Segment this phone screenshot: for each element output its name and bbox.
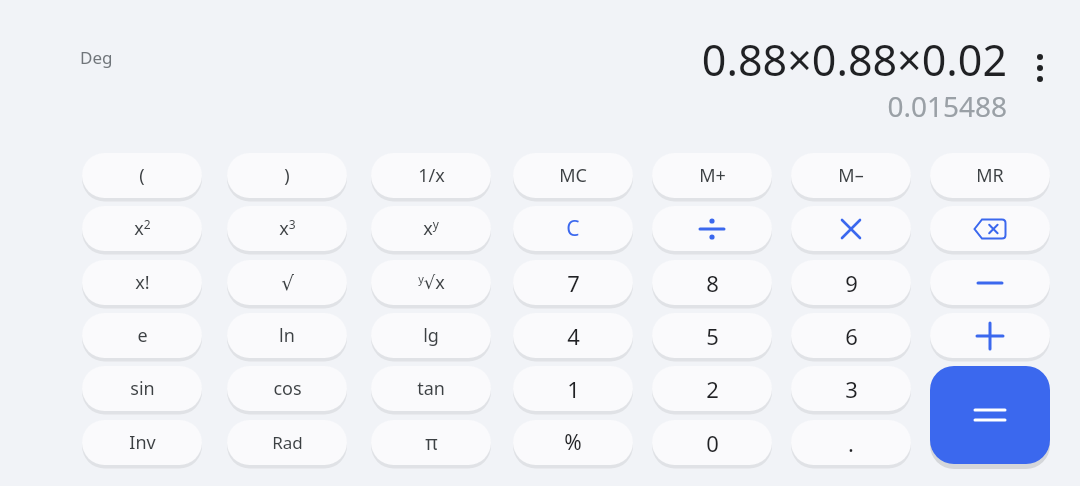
staticText: MC — [559, 163, 587, 188]
staticText: Deg — [80, 46, 113, 69]
staticText: 0 — [706, 428, 719, 458]
button[interactable]: e — [82, 313, 202, 358]
button[interactable]: M+ — [652, 153, 772, 198]
button[interactable]: 1/x — [371, 153, 491, 198]
button[interactable]: 1 — [513, 366, 633, 411]
staticText: e — [137, 323, 148, 348]
button[interactable]: 2 — [652, 366, 772, 411]
staticText: C — [566, 214, 580, 243]
staticText: 9 — [845, 268, 858, 298]
staticText: 2 — [706, 374, 719, 404]
staticText: 4 — [567, 321, 580, 351]
staticText: ) — [284, 163, 290, 188]
staticText: x2 — [134, 216, 151, 241]
button[interactable]: 9 — [791, 260, 911, 305]
staticText: 1/x — [418, 163, 445, 188]
button[interactable]: x2 — [82, 206, 202, 251]
button[interactable]: sin — [82, 366, 202, 411]
staticText: Rad — [272, 431, 303, 454]
staticText: % — [564, 428, 582, 457]
button[interactable]: x3 — [227, 206, 347, 251]
staticText: √ — [281, 271, 294, 294]
staticText: Inv — [129, 430, 156, 455]
button[interactable]: 4 — [513, 313, 633, 358]
button[interactable]: Rad — [227, 420, 347, 465]
button[interactable]: Plus — [930, 313, 1050, 358]
staticText: x3 — [279, 216, 296, 241]
button[interactable]: ( — [82, 153, 202, 198]
button[interactable]: Equals — [930, 366, 1050, 464]
button[interactable]: . — [791, 420, 911, 465]
button[interactable]: Backspace — [930, 206, 1050, 251]
button[interactable]: Inv — [82, 420, 202, 465]
staticText: 6 — [845, 321, 858, 351]
button[interactable]: M– — [791, 153, 911, 198]
staticText: xy — [423, 216, 439, 241]
button[interactable]: 0 — [652, 420, 772, 465]
button[interactable]: Deg — [80, 42, 144, 72]
button[interactable]: 6 — [791, 313, 911, 358]
button[interactable]: ) — [227, 153, 347, 198]
staticText: lg — [423, 323, 439, 348]
button[interactable]: Minus — [930, 260, 1050, 305]
staticText: 8 — [706, 268, 719, 298]
staticText: MR — [976, 163, 1004, 188]
button[interactable]: cos — [227, 366, 347, 411]
button[interactable]: √ — [227, 260, 347, 305]
staticText: ln — [279, 323, 295, 348]
button[interactable]: Divide — [652, 206, 772, 251]
staticText: . — [848, 428, 854, 458]
staticText: π — [425, 430, 438, 456]
staticText: ( — [139, 163, 145, 188]
button[interactable]: 3 — [791, 366, 911, 411]
staticText: 3 — [845, 374, 858, 404]
button[interactable]: MR — [930, 153, 1050, 198]
staticText: 5 — [706, 321, 719, 351]
button[interactable]: 8 — [652, 260, 772, 305]
staticText: 7 — [567, 268, 580, 298]
staticText: 0.88×0.88×0.02 — [701, 30, 1007, 86]
staticText: y√x — [418, 270, 445, 295]
button[interactable]: x! — [82, 260, 202, 305]
button[interactable]: y√x — [371, 260, 491, 305]
button[interactable]: More options — [1022, 38, 1058, 98]
button[interactable]: lg — [371, 313, 491, 358]
staticText: M+ — [699, 163, 726, 188]
button[interactable]: 5 — [652, 313, 772, 358]
button[interactable]: ln — [227, 313, 347, 358]
staticText: cos — [273, 376, 302, 401]
button[interactable]: MC — [513, 153, 633, 198]
staticText: x! — [135, 270, 150, 295]
staticText: 0.015488 — [887, 87, 1007, 123]
staticText: 1 — [567, 374, 580, 404]
button[interactable]: Multiply — [791, 206, 911, 251]
button[interactable]: C — [513, 206, 633, 251]
button[interactable]: xy — [371, 206, 491, 251]
button[interactable]: tan — [371, 366, 491, 411]
button[interactable]: % — [513, 420, 633, 465]
staticText: tan — [417, 376, 445, 401]
button[interactable]: 7 — [513, 260, 633, 305]
button[interactable]: π — [371, 420, 491, 465]
staticText: M– — [838, 163, 864, 188]
staticText: sin — [130, 376, 155, 401]
